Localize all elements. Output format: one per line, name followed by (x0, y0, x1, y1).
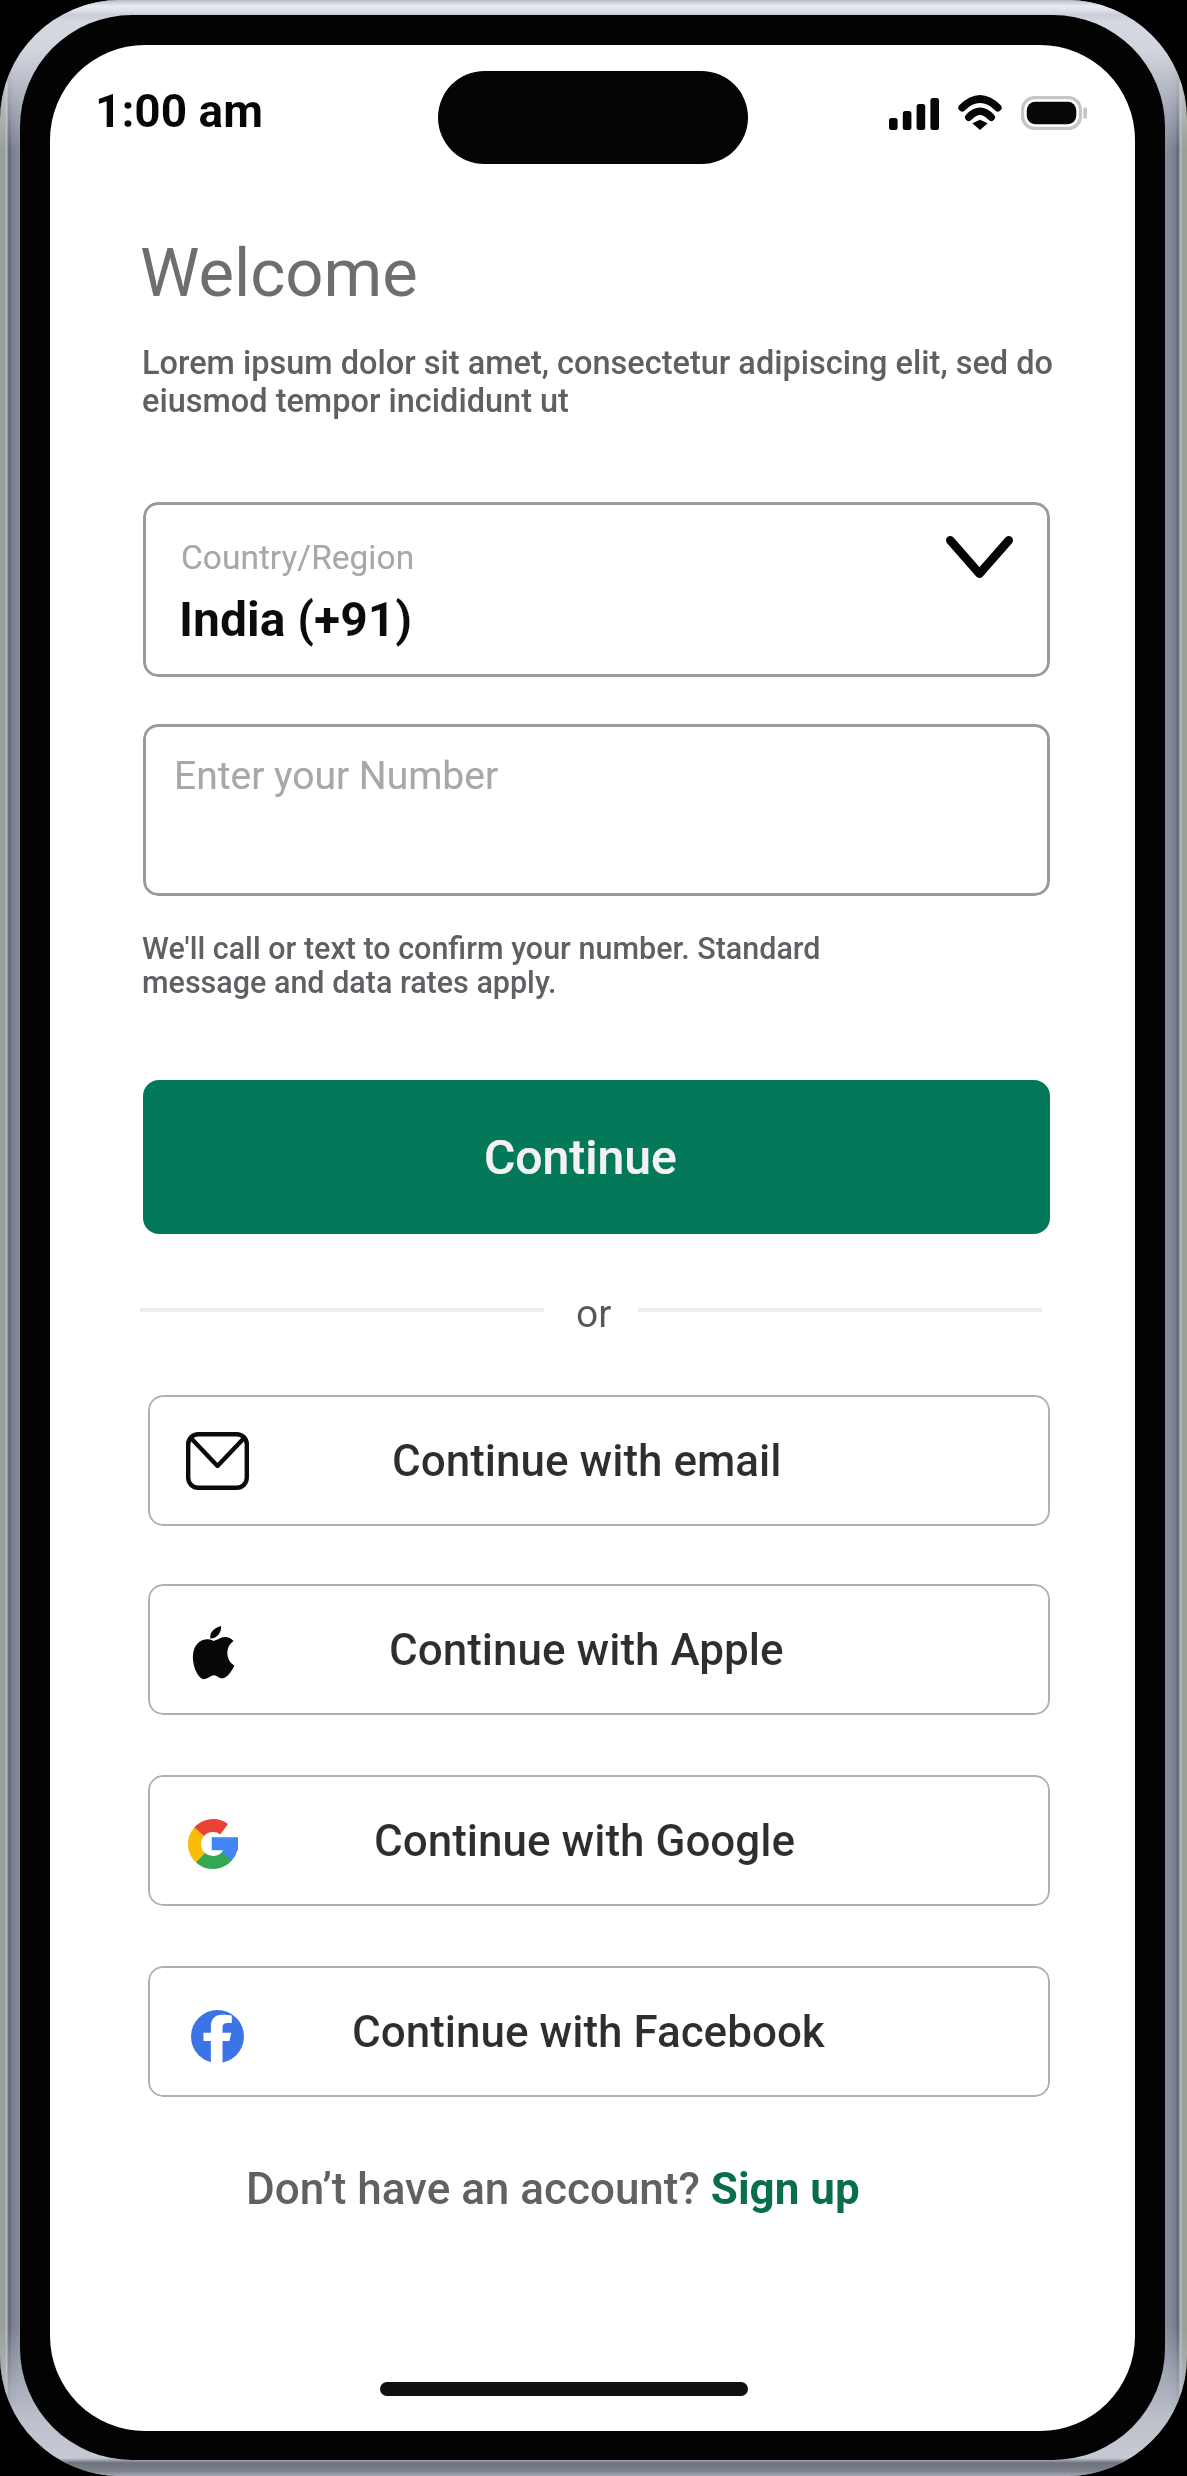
button[interactable]: Continue with email (148, 1395, 1050, 1526)
staticText: Continue with Google (374, 1815, 796, 1867)
staticText: Continue with email (392, 1435, 782, 1487)
staticText: India (+91) (179, 591, 413, 647)
staticText: Lorem ipsum dolor sit amet, consectetur … (142, 344, 1054, 420)
button[interactable]: Continue (143, 1080, 1050, 1234)
staticText: Continue (484, 1129, 677, 1185)
staticText: Continue with Facebook (352, 2006, 825, 2058)
button[interactable]: Continue with Google (148, 1775, 1050, 1906)
staticText: Enter your Number (174, 753, 499, 799)
button[interactable]: Enter your Number (143, 724, 1050, 896)
staticText: Welcome (140, 234, 418, 313)
staticText: or (576, 1291, 612, 1337)
staticText: Country/Region (181, 538, 415, 577)
button[interactable]: Continue with Apple (148, 1584, 1050, 1715)
staticText: 1:00 am (95, 84, 264, 138)
button[interactable]: Continue with Facebook (148, 1966, 1050, 2097)
staticText: Continue with Apple (389, 1624, 784, 1676)
button[interactable]: Don’t have an account? Sign up (246, 2163, 860, 2215)
button[interactable]: Country/Region (143, 502, 1050, 677)
other: Select country or region (946, 536, 1013, 578)
staticText: We'll call or text to confirm your numbe… (142, 931, 821, 1000)
